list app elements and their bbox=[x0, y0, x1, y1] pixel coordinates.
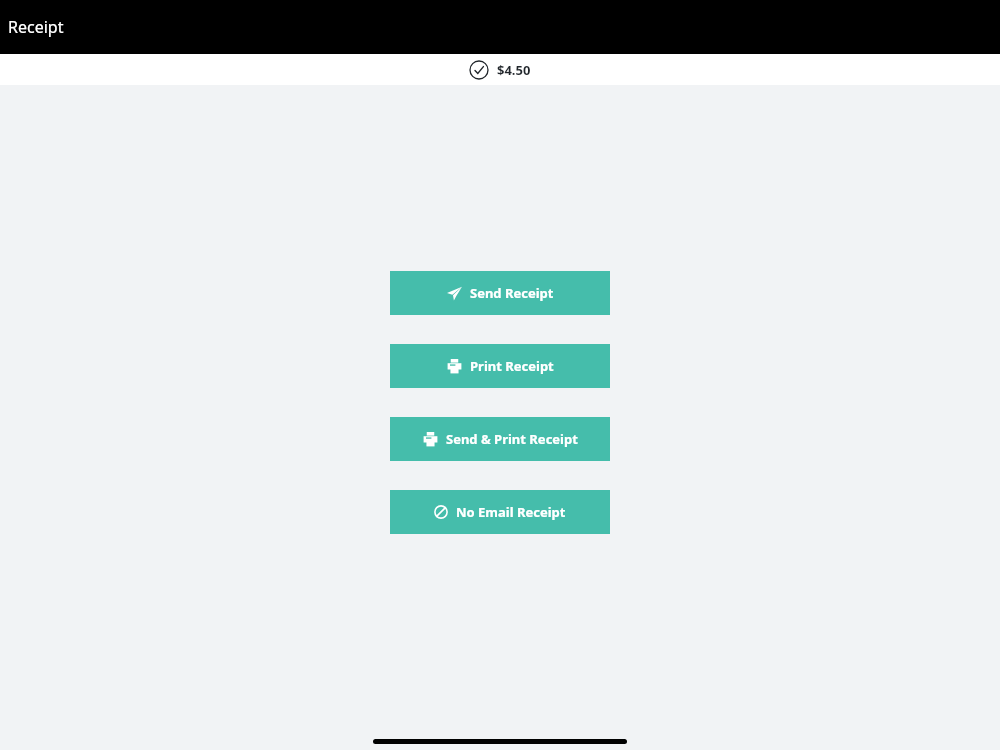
staticText: $4.50 bbox=[497, 61, 531, 79]
button[interactable]: Send & Print Receipt bbox=[390, 417, 610, 461]
button[interactable]: Print Receipt bbox=[390, 344, 610, 388]
staticText: Print Receipt bbox=[470, 357, 554, 375]
staticText: Send & Print Receipt bbox=[446, 430, 578, 448]
staticText: Send Receipt bbox=[470, 284, 554, 302]
button[interactable]: No Email Receipt bbox=[390, 490, 610, 534]
button[interactable]: Send Receipt bbox=[390, 271, 610, 315]
staticText: Receipt bbox=[8, 16, 64, 38]
other: Payment complete bbox=[469, 60, 489, 80]
button[interactable]: Receipt bbox=[0, 0, 1000, 54]
staticText: No Email Receipt bbox=[456, 503, 566, 521]
